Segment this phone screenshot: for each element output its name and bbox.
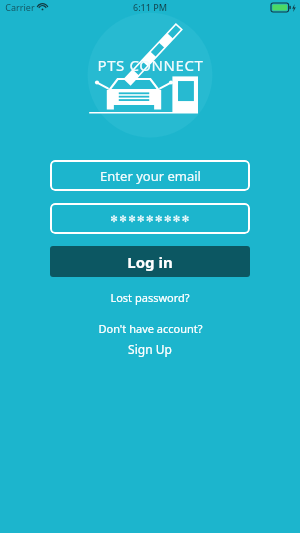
button[interactable]: Lost password? (104, 288, 196, 307)
button[interactable]: Sign Up (122, 339, 178, 359)
staticText: ✻✻✻✻✻✻✻✻✻ (110, 214, 191, 224)
staticText: Lost password? (110, 290, 190, 305)
staticText: Carrier (5, 1, 35, 13)
button[interactable]: Log in (50, 246, 250, 277)
staticText: Log in (127, 252, 173, 272)
staticText: 6:11 PM (133, 1, 167, 13)
button[interactable]: Enter your email (50, 160, 250, 191)
button[interactable]: ✻✻✻✻✻✻✻✻✻ (50, 203, 250, 234)
staticText: Don't have account? (98, 321, 203, 336)
staticText: Sign Up (128, 341, 172, 357)
staticText: Enter your email (100, 167, 201, 185)
staticText: PTS CONNECT (97, 55, 204, 75)
